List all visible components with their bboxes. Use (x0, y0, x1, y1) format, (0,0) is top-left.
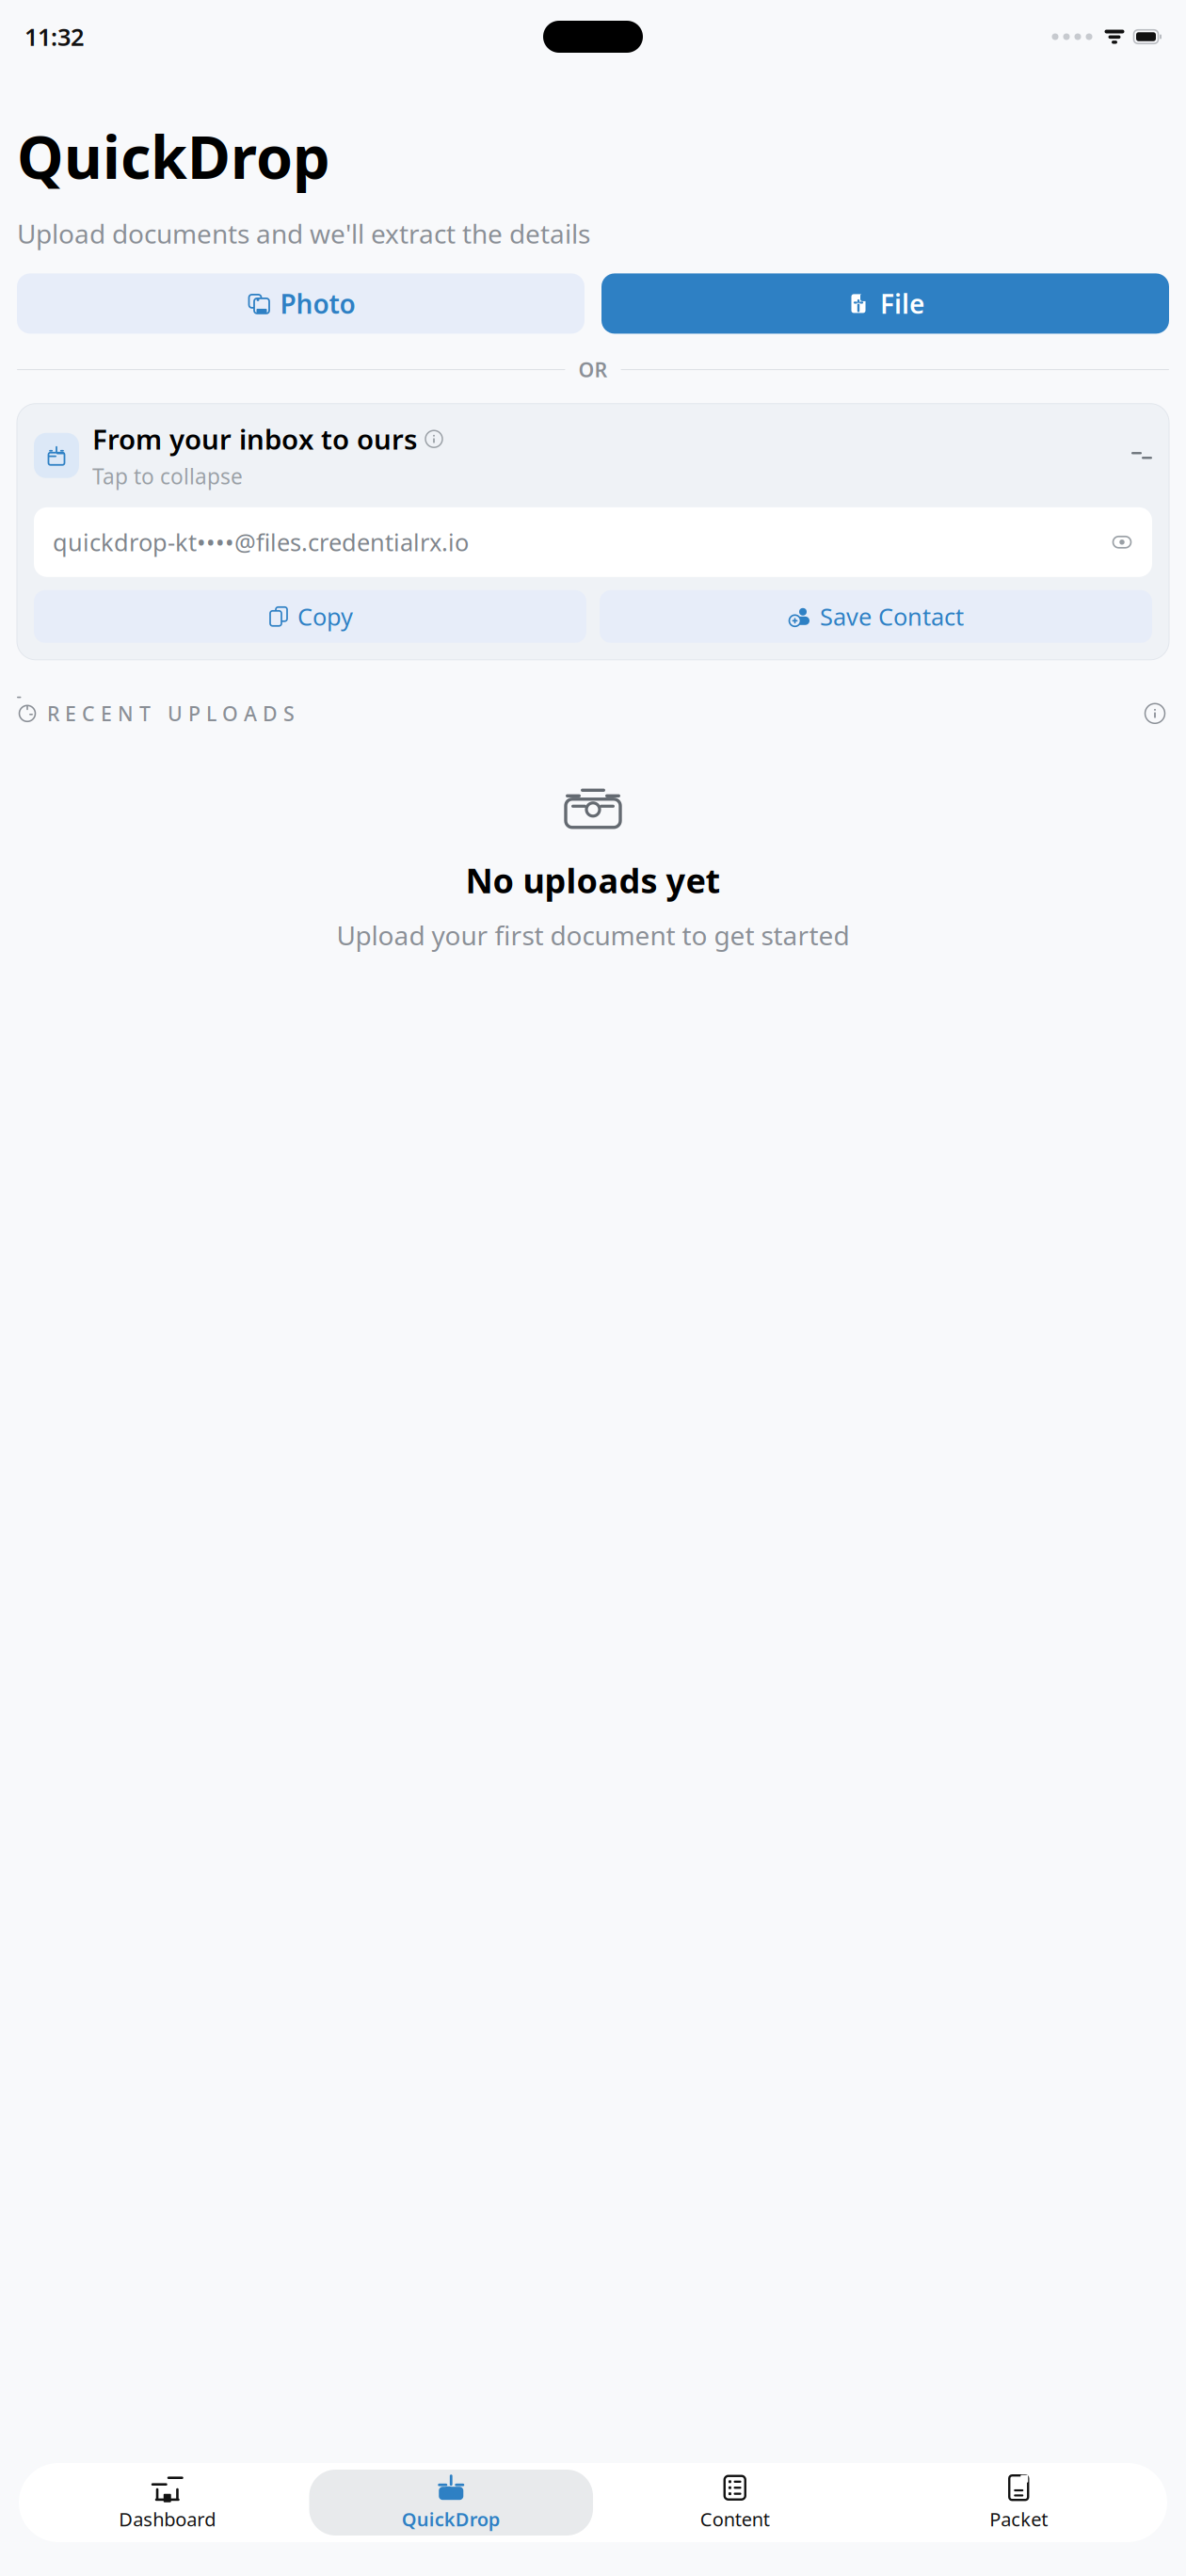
staticText: 11:32 (24, 21, 84, 53)
staticText: Packet (989, 2507, 1048, 2532)
button[interactable]: Reveal email address (1111, 531, 1133, 553)
staticText: Dashboard (119, 2507, 216, 2532)
button[interactable]: Dashboard (25, 2470, 309, 2536)
staticText: OR (578, 356, 608, 383)
button[interactable]: Photo (17, 273, 585, 334)
staticText: QuickDrop (17, 117, 330, 195)
staticText: File (880, 286, 924, 321)
button[interactable]: File (601, 273, 1169, 334)
button[interactable]: Save Contact (600, 590, 1152, 643)
staticText: No uploads yet (465, 858, 721, 903)
staticText: Save Contact (820, 601, 964, 632)
button[interactable]: About recent uploads (1141, 699, 1169, 728)
staticText: From your inbox to ours (92, 421, 417, 457)
staticText: quickdrop-kt••••@files.credentialrx.io (53, 526, 469, 558)
staticText: QuickDrop (402, 2507, 501, 2532)
staticText: Copy (297, 601, 353, 632)
staticText: Photo (280, 286, 355, 321)
staticText: Upload your first document to get starte… (337, 918, 849, 953)
button[interactable]: From your inbox to ours (34, 421, 1152, 490)
staticText: Tap to collapse (92, 462, 243, 490)
staticText: R E C E N T U P L O A D S (47, 700, 295, 727)
button[interactable]: Content (593, 2470, 877, 2536)
staticText: Upload documents and we'll extract the d… (17, 216, 590, 251)
button[interactable]: Packet (877, 2470, 1161, 2536)
staticText: Content (700, 2507, 770, 2532)
button[interactable]: QuickDrop (309, 2470, 593, 2536)
button[interactable]: Copy (34, 590, 586, 643)
